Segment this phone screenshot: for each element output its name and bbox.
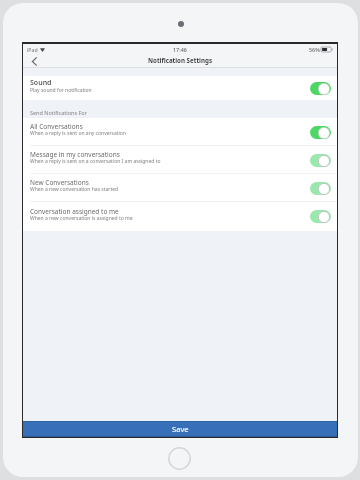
staticText: When a new conversation is assigned to m… — [30, 215, 133, 222]
button[interactable]: All Conversations — [23, 118, 337, 146]
staticText: When a reply is sent on a conversation I… — [30, 158, 161, 165]
button[interactable]: Toggle — [310, 154, 331, 167]
button[interactable]: Toggle — [310, 82, 331, 95]
staticText: iPad — [27, 46, 38, 53]
button[interactable]: Home — [168, 447, 191, 470]
staticText: When a new conversation has started — [30, 186, 119, 193]
button[interactable]: Message in my conversations — [23, 146, 337, 174]
button[interactable]: Sound — [23, 76, 337, 100]
button[interactable]: Back — [23, 54, 45, 68]
staticText: Save — [172, 424, 189, 434]
button[interactable]: New Conversations — [23, 174, 337, 202]
staticText: Message in my conversations — [30, 150, 120, 159]
staticText: Notification Settings — [148, 56, 212, 64]
staticText: 56% — [309, 46, 320, 53]
staticText: Conversation assigned to me — [30, 207, 119, 216]
button[interactable]: Toggle — [310, 210, 331, 223]
button[interactable]: Save — [23, 421, 337, 437]
staticText: Play sound for notification — [30, 87, 92, 94]
button[interactable]: Toggle — [310, 126, 331, 139]
staticText: 17:46 — [173, 46, 187, 53]
staticText: Send Notifications For — [30, 109, 87, 116]
staticText: When a reply is sent on any conversation — [30, 130, 126, 137]
staticText: New Conversations — [30, 178, 89, 187]
staticText: Sound — [30, 78, 52, 88]
button[interactable]: Toggle — [310, 182, 331, 195]
staticText: All Conversations — [30, 122, 83, 131]
button[interactable]: Conversation assigned to me — [23, 202, 337, 231]
